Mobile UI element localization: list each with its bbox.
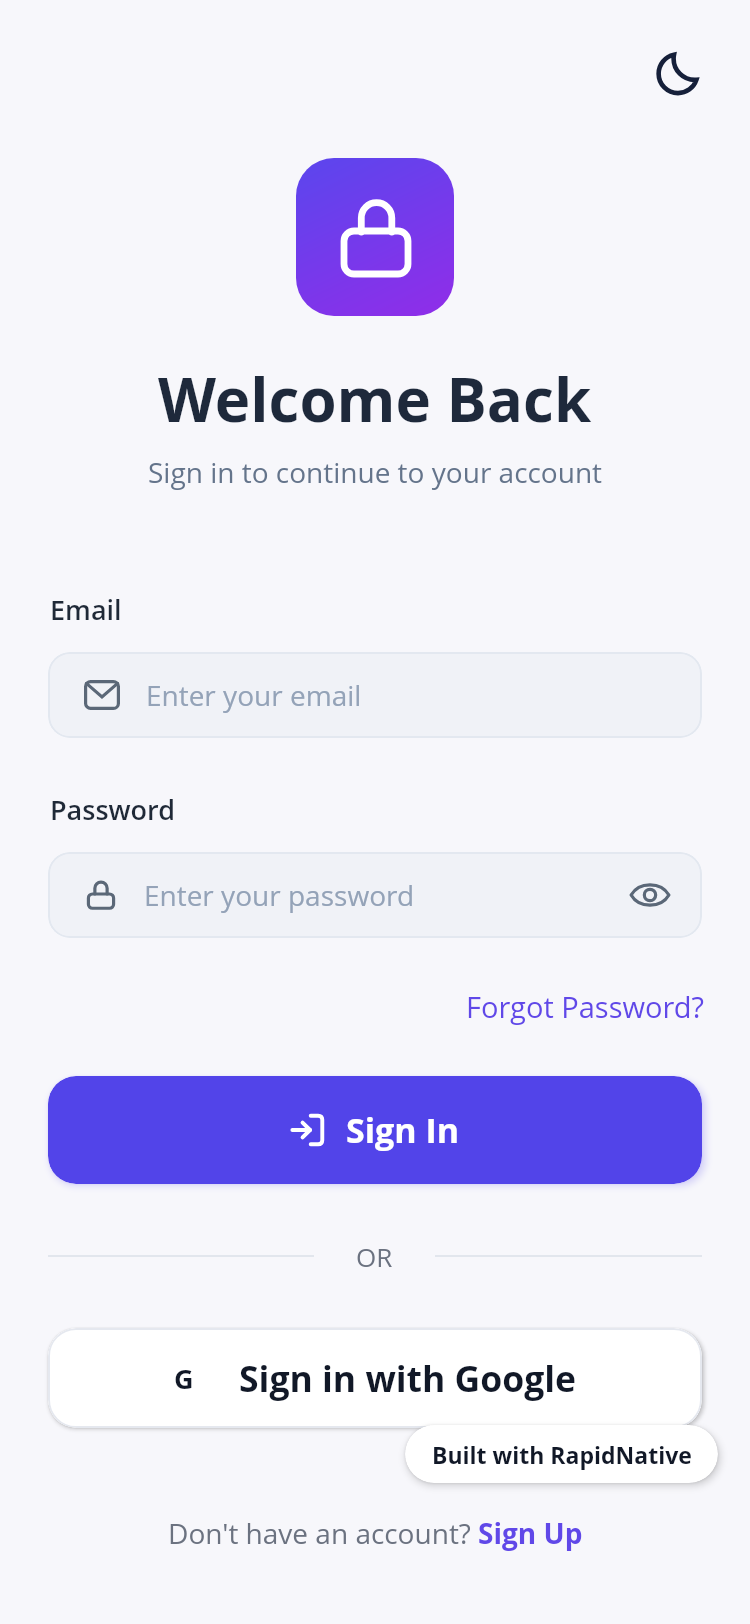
button[interactable]: G — [48, 1328, 702, 1428]
staticText: Sign in with Google — [239, 1354, 577, 1402]
staticText: Sign in to continue to your account — [148, 453, 602, 491]
staticText: Password — [50, 791, 176, 828]
button[interactable]: Forgot Password? — [466, 987, 705, 1026]
staticText: Enter your email — [146, 676, 362, 714]
staticText: Sign In — [346, 1107, 460, 1153]
staticText: OR — [356, 1239, 393, 1274]
button[interactable]: Enter your email — [48, 652, 702, 738]
staticText: G — [174, 1360, 194, 1397]
staticText: Welcome Back — [158, 358, 592, 440]
button[interactable] — [646, 40, 710, 104]
button[interactable]: Built with RapidNative — [405, 1425, 718, 1483]
staticText: Enter your password — [144, 876, 628, 914]
staticText: Built with RapidNative — [432, 1439, 692, 1470]
staticText: Don't have an account? Sign Up — [168, 1514, 583, 1552]
staticText: Email — [50, 591, 122, 628]
button[interactable]: Enter your password — [48, 852, 702, 938]
button[interactable]: Don't have an account? Sign Up — [0, 1514, 750, 1552]
button[interactable]: Sign In — [48, 1076, 702, 1184]
button[interactable] — [628, 873, 672, 917]
